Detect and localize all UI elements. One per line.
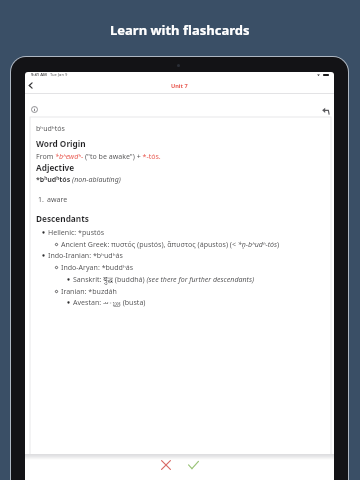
staticText: Ancient Greek: πυστός (pustós), ἄπυστος … — [61, 239, 280, 249]
staticText: Sanskrit: बुद्ध (buddhá) (see there for … — [73, 274, 254, 284]
staticText: Hellenic: *pustós — [48, 227, 105, 237]
staticText: Tue Jan 9 — [50, 72, 68, 78]
button[interactable]: Correct — [188, 459, 199, 470]
staticText: Avestan: 𐬠𐬎𐬯𐬹𐬀 (busta) — [73, 297, 146, 307]
staticText: Iranian: *buzdáh — [61, 286, 117, 296]
staticText: Indo-Iranian: *bʰudʰás — [48, 250, 123, 260]
staticText: Adjective — [36, 162, 75, 173]
button[interactable]: Undo — [322, 107, 330, 115]
staticText: bʰudʰtós — [36, 123, 65, 133]
staticText: Unit 7 — [171, 82, 188, 90]
staticText: From *bʰewdʰ- ("to be awake") + *-tós. — [36, 151, 161, 161]
staticText: 1. — [38, 194, 44, 204]
staticText: aware — [47, 194, 68, 204]
button[interactable]: Incorrect — [161, 460, 171, 470]
staticText: *bʰudʰtós (non-ablauting) — [36, 174, 121, 184]
staticText: Learn with flashcards — [110, 21, 250, 39]
staticText: 9:41 AM — [31, 72, 47, 78]
staticText: Descendants — [36, 213, 89, 224]
button[interactable]: Back — [26, 81, 35, 90]
staticText: Word Origin — [36, 138, 86, 149]
staticText: Indo-Aryan: *buddʰás — [61, 262, 134, 272]
button[interactable]: Information — [31, 106, 38, 113]
